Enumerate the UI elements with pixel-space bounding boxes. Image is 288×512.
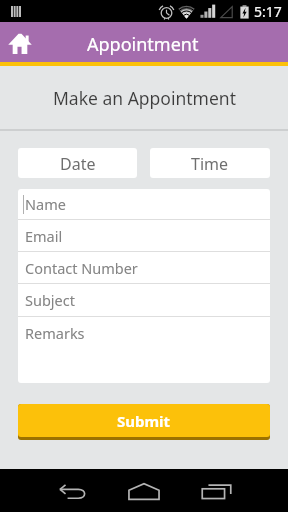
button[interactable]: Date <box>18 148 137 178</box>
button[interactable]: Remarks <box>18 317 270 349</box>
button[interactable]: Email <box>18 220 270 251</box>
staticText: Remarks <box>25 323 85 343</box>
button[interactable]: Contact Number <box>18 252 270 283</box>
staticText: 5:17 <box>254 2 282 21</box>
staticText: Subject <box>25 290 75 310</box>
staticText: Appointment <box>87 32 199 57</box>
staticText: Submit <box>117 411 171 431</box>
button[interactable]: Submit <box>18 404 270 437</box>
button[interactable]: Name <box>18 189 270 219</box>
staticText: Name <box>25 194 66 214</box>
staticText: Email <box>25 226 63 246</box>
staticText: Contact Number <box>25 258 138 278</box>
button[interactable]: Home <box>0 22 39 62</box>
button[interactable]: Recent apps <box>185 469 247 512</box>
staticText: Date <box>60 153 96 175</box>
button[interactable]: Back <box>41 469 103 512</box>
button[interactable]: Subject <box>18 284 270 316</box>
button[interactable]: Home <box>113 469 175 512</box>
staticText: Time <box>191 153 229 175</box>
button[interactable]: Time <box>150 148 270 178</box>
staticText: Make an Appointment <box>53 86 236 110</box>
